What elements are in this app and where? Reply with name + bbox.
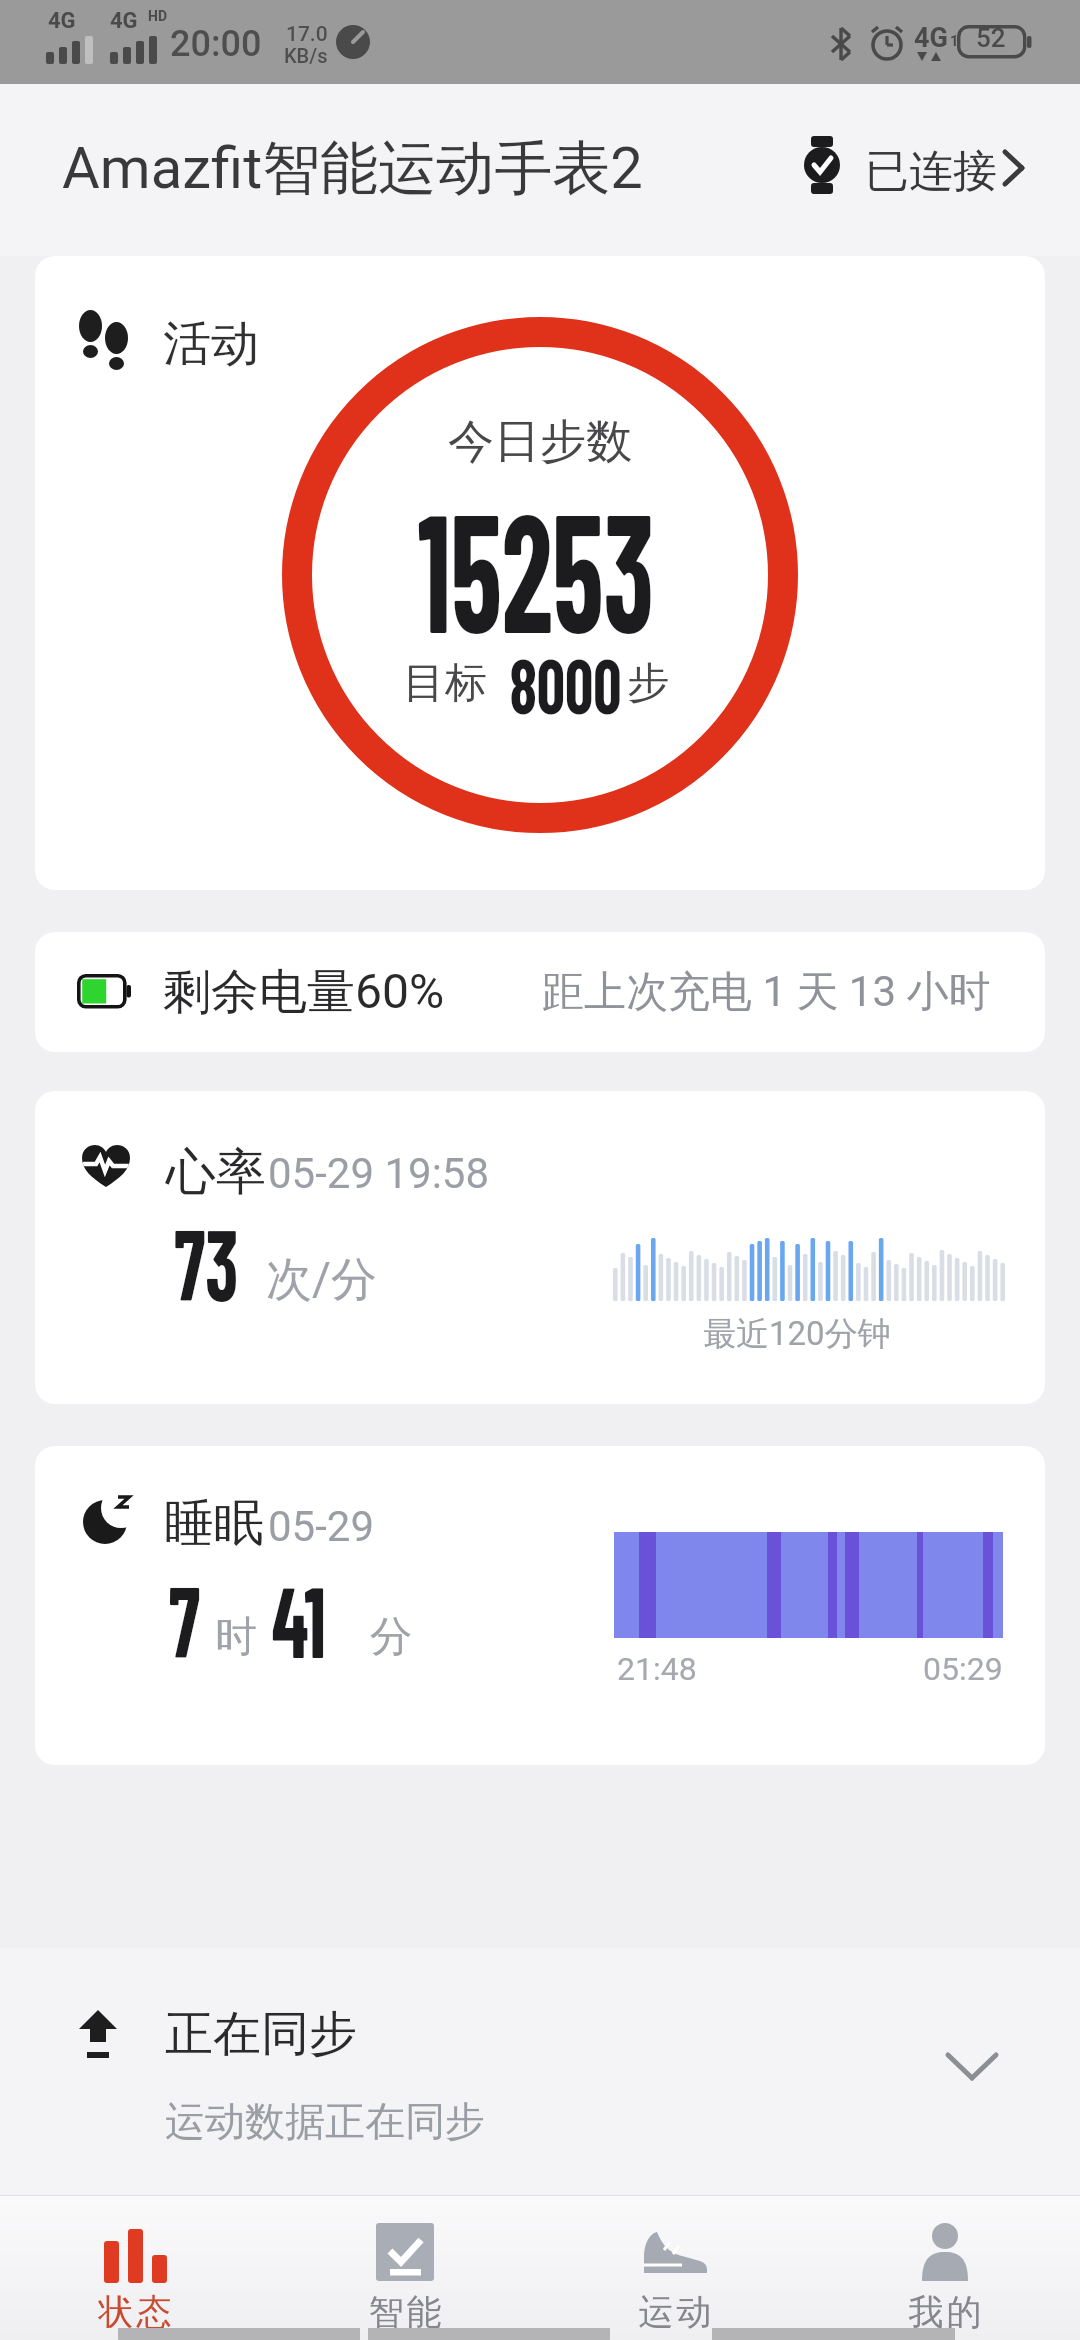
staticText: 距上次充电 1 天 13 小时: [542, 966, 991, 1019]
staticText: 最近120分钟: [703, 1313, 891, 1355]
staticText: 4G: [48, 8, 76, 34]
staticText: Amazfit智能运动手表2: [62, 132, 643, 205]
staticText: 21:48: [617, 1650, 697, 1688]
staticText: 已连接: [865, 144, 997, 199]
button[interactable]: 智能: [305, 2195, 505, 2340]
staticText: 05-29: [268, 1502, 375, 1551]
button[interactable]: 已连接: [790, 124, 1040, 214]
staticText: 目标: [403, 657, 487, 710]
staticText: 睡眠: [164, 1492, 264, 1555]
staticText: 05-29 19:58: [268, 1149, 490, 1198]
button[interactable]: 睡眠: [35, 1446, 1045, 1765]
button[interactable]: 正在同步: [0, 1948, 1080, 2195]
staticText: 15253: [418, 467, 654, 666]
staticText: 心率: [166, 1141, 266, 1204]
staticText: 52: [976, 23, 1006, 53]
staticText: 1: [950, 32, 959, 50]
staticText: 活动: [163, 314, 259, 374]
staticText: 73: [174, 1201, 239, 1321]
staticText: 时: [215, 1611, 257, 1664]
button[interactable]: 剩余电量60%: [35, 932, 1045, 1052]
staticText: 运动数据正在同步: [165, 2096, 485, 2146]
button[interactable]: 活动: [35, 256, 1045, 890]
staticText: 正在同步: [165, 2004, 357, 2064]
button[interactable]: 心率: [35, 1091, 1045, 1404]
staticText: KB/s: [284, 44, 328, 67]
staticText: 4G: [110, 8, 138, 34]
staticText: 步: [627, 657, 669, 710]
staticText: 运动: [637, 2290, 713, 2334]
staticText: HD: [148, 8, 168, 24]
staticText: 次/分: [266, 1251, 377, 1309]
staticText: 05:29: [923, 1650, 1003, 1688]
staticText: 4G: [914, 22, 948, 54]
staticText: 我的: [907, 2290, 983, 2334]
button[interactable]: 运动: [575, 2195, 775, 2340]
staticText: 41: [272, 1558, 326, 1678]
staticText: 8000: [509, 638, 604, 729]
staticText: 7: [169, 1558, 200, 1678]
button[interactable]: 状态: [35, 2195, 235, 2340]
staticText: 20:00: [170, 23, 262, 65]
staticText: 剩余电量60%: [163, 962, 445, 1022]
button[interactable]: 我的: [845, 2195, 1045, 2340]
staticText: 分: [370, 1611, 412, 1664]
staticText: 17.0: [286, 22, 328, 47]
staticText: 智能: [367, 2290, 443, 2334]
staticText: 状态: [97, 2290, 173, 2334]
staticText: 今日步数: [448, 413, 632, 471]
